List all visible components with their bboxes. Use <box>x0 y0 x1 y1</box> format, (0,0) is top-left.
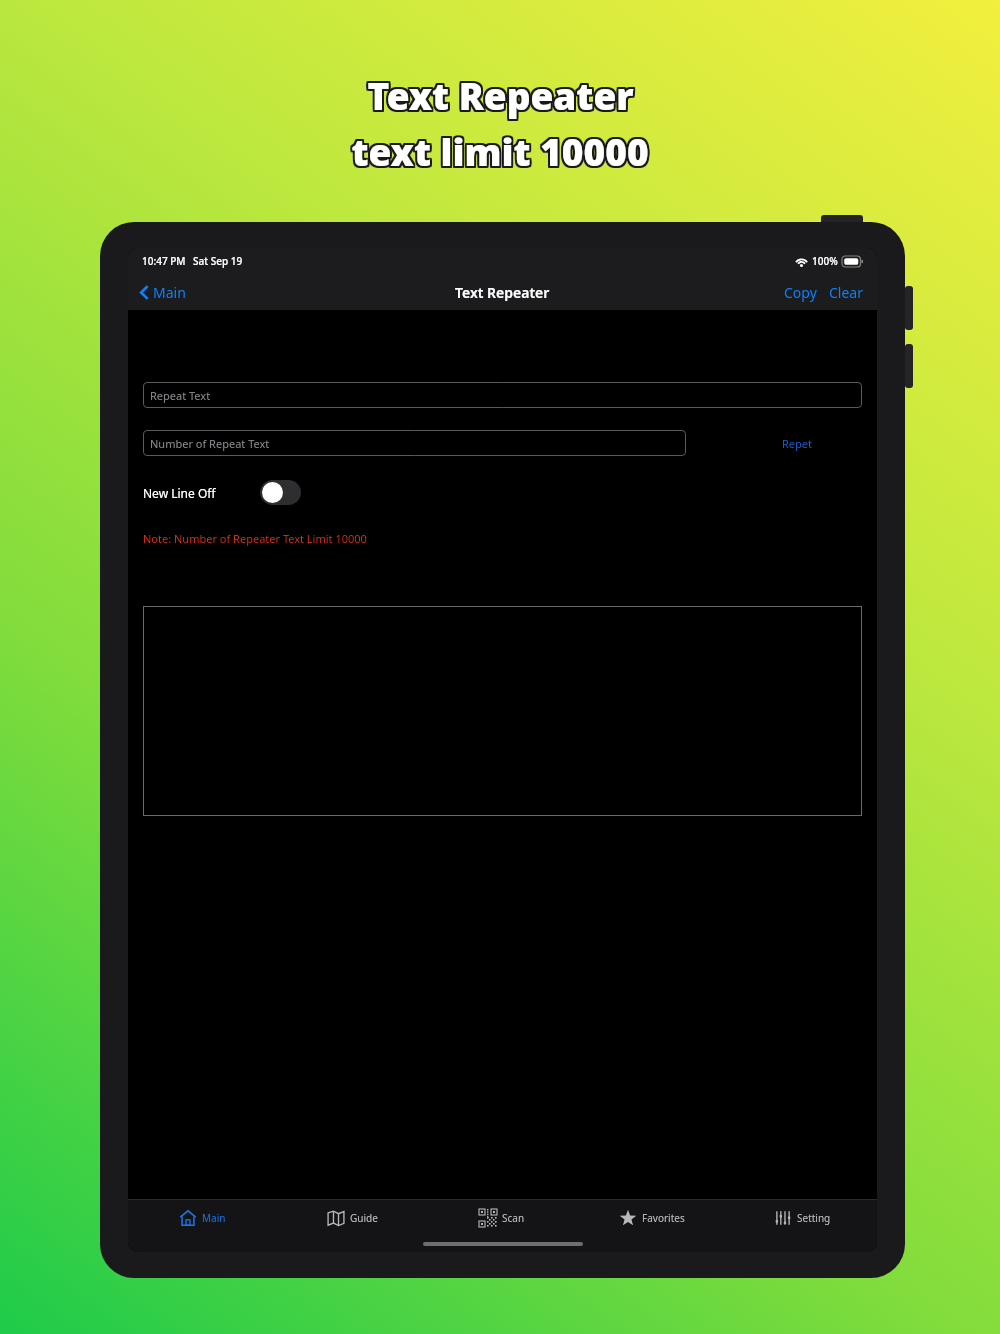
staticText: text limit 10000 <box>350 128 648 178</box>
staticText: text limit 10000 <box>350 125 648 175</box>
staticText: text limit 10000 <box>353 126 651 176</box>
staticText: Text Repeater <box>369 69 636 119</box>
staticText: Text Repeater <box>369 72 636 122</box>
staticText: Text Repeater <box>367 70 634 120</box>
staticText: Repeat Text <box>150 388 211 403</box>
button[interactable]: Guide <box>277 1200 427 1236</box>
staticText: text limit 10000 <box>353 125 651 175</box>
staticText: Text Repeater <box>367 68 634 118</box>
staticText: text limit 10000 <box>350 124 648 174</box>
staticText: Text Repeater <box>369 71 636 121</box>
staticText: Text Repeater <box>366 72 633 122</box>
staticText: Text Repeater <box>368 72 635 122</box>
button[interactable]: Setting <box>727 1200 877 1236</box>
button[interactable]: Main <box>128 1200 277 1236</box>
staticText: text limit 10000 <box>352 124 650 174</box>
staticText: Clear <box>829 283 863 302</box>
staticText: text limit 10000 <box>353 124 651 174</box>
staticText: text limit 10000 <box>351 124 649 174</box>
staticText: Main <box>153 283 186 302</box>
button[interactable]: Scan <box>427 1200 577 1236</box>
staticText: text limit 10000 <box>349 125 647 175</box>
staticText: Setting <box>797 1211 831 1225</box>
staticText: text limit 10000 <box>350 126 648 176</box>
staticText: Text Repeater <box>367 71 634 121</box>
staticText: text limit 10000 <box>352 126 650 176</box>
staticText: Text Repeater <box>369 70 636 120</box>
staticText: Text Repeater <box>368 70 635 120</box>
staticText: text limit 10000 <box>349 127 647 177</box>
staticText: Repet <box>782 436 812 451</box>
staticText: Number of Repeat Text <box>150 436 270 451</box>
staticText: text limit 10000 <box>351 128 649 178</box>
staticText: Sat Sep 19 <box>193 254 243 268</box>
staticText: Copy <box>784 283 817 302</box>
button[interactable]: Clear <box>825 280 867 305</box>
button[interactable]: Repeat Text <box>143 382 862 408</box>
staticText: 10:47 PM <box>142 254 186 268</box>
button[interactable]: Favorites <box>577 1200 727 1236</box>
staticText: text limit 10000 <box>351 127 649 177</box>
staticText: text limit 10000 <box>352 127 650 177</box>
staticText: Text Repeater <box>365 69 632 119</box>
staticText: Text Repeater <box>455 283 550 302</box>
button[interactable] <box>143 606 862 816</box>
staticText: Favorites <box>642 1211 685 1225</box>
button[interactable]: New Line Off <box>143 480 301 505</box>
staticText: Text Repeater <box>366 69 633 119</box>
staticText: Text Repeater <box>366 68 633 118</box>
staticText: text limit 10000 <box>350 127 648 177</box>
staticText: Text Repeater <box>365 70 632 120</box>
staticText: Text Repeater <box>365 72 632 122</box>
staticText: Text Repeater <box>368 71 635 121</box>
staticText: Note: Number of Repeater Text Limit 1000… <box>143 531 367 546</box>
staticText: 100% <box>812 254 838 268</box>
staticText: text limit 10000 <box>351 126 649 176</box>
staticText: Text Repeater <box>367 72 634 122</box>
staticText: Text Repeater <box>368 68 635 118</box>
staticText: text limit 10000 <box>349 126 647 176</box>
staticText: Text Repeater <box>366 70 633 120</box>
staticText: Text Repeater <box>368 69 635 119</box>
button[interactable]: Copy <box>780 280 821 305</box>
button[interactable]: Repet <box>776 432 818 455</box>
staticText: text limit 10000 <box>351 125 649 175</box>
staticText: Text Repeater <box>366 71 633 121</box>
button[interactable]: Number of Repeat Text <box>143 430 686 456</box>
staticText: text limit 10000 <box>349 128 647 178</box>
staticText: New Line Off <box>143 485 216 501</box>
staticText: Main <box>202 1211 226 1225</box>
staticText: Guide <box>350 1211 378 1225</box>
staticText: Text Repeater <box>369 68 636 118</box>
staticText: text limit 10000 <box>352 128 650 178</box>
staticText: Scan <box>502 1211 525 1225</box>
staticText: text limit 10000 <box>349 124 647 174</box>
staticText: Text Repeater <box>365 71 632 121</box>
staticText: Text Repeater <box>367 69 634 119</box>
button[interactable]: Main <box>136 280 190 305</box>
staticText: Text Repeater <box>365 68 632 118</box>
staticText: text limit 10000 <box>353 128 651 178</box>
staticText: text limit 10000 <box>353 127 651 177</box>
staticText: text limit 10000 <box>352 125 650 175</box>
